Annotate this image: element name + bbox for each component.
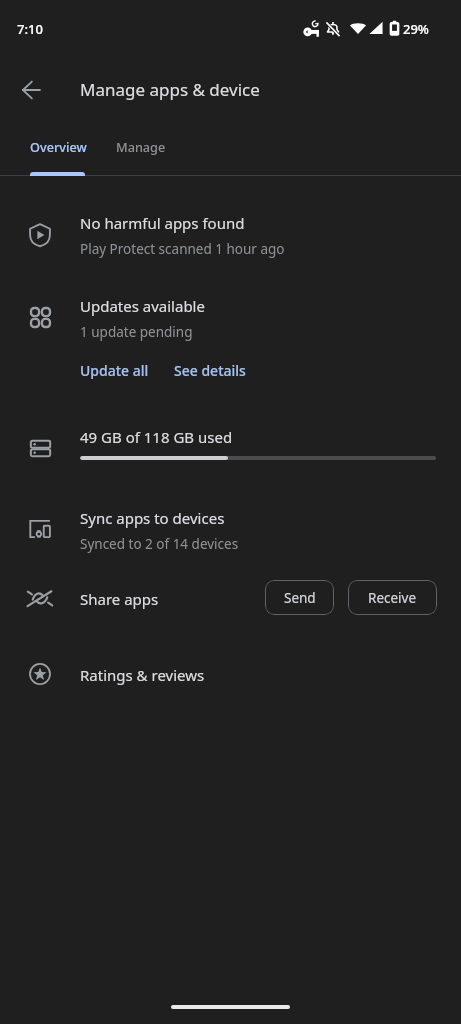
staticText: Play Protect scanned 1 hour ago [80, 240, 285, 258]
button[interactable]: Sync apps to devices [0, 491, 461, 565]
staticText: Manage [116, 138, 166, 155]
staticText: Share apps [80, 589, 159, 609]
staticText: Send [284, 589, 316, 607]
button[interactable]: Updates available [0, 279, 461, 353]
staticText: 1 update pending [80, 323, 193, 341]
staticText: Manage apps & device [80, 78, 260, 101]
staticText: Sync apps to devices [80, 508, 225, 528]
button[interactable]: No harmful apps found [0, 196, 461, 270]
staticText: No harmful apps found [80, 213, 245, 233]
button[interactable]: Manage [102, 122, 180, 170]
staticText: 7:10 [17, 20, 43, 38]
staticText: Update all [80, 361, 149, 380]
button[interactable]: 49 GB of 118 GB used [0, 410, 461, 486]
staticText: Overview [30, 138, 87, 155]
staticText: Ratings & reviews [80, 665, 205, 685]
button[interactable]: Ratings & reviews [0, 646, 461, 702]
staticText: Receive [368, 589, 417, 607]
staticText: Synced to 2 of 14 devices [80, 535, 239, 553]
button[interactable]: Receive [348, 580, 437, 615]
staticText: 49 GB of 118 GB used [80, 427, 233, 447]
staticText: Updates available [80, 296, 205, 316]
button[interactable]: See details [164, 352, 256, 389]
button[interactable]: Overview [14, 122, 102, 170]
button[interactable]: Navigate up [9, 67, 54, 112]
staticText: See details [174, 361, 246, 380]
button[interactable]: Send [265, 580, 334, 615]
button[interactable]: Update all [70, 352, 159, 389]
staticText: 29% [403, 20, 429, 38]
